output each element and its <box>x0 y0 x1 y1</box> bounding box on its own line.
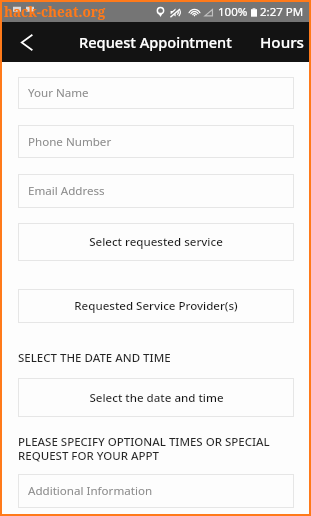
staticText: Phone Number <box>28 134 112 150</box>
button[interactable]: Requested Service Provider(s) <box>18 289 294 323</box>
staticText: Additional Information <box>28 483 153 499</box>
button[interactable]: Select requested service <box>18 223 294 261</box>
staticText: 100% <box>218 4 248 20</box>
button[interactable]: Email Address <box>18 174 294 208</box>
button[interactable]: Phone Number <box>18 125 294 158</box>
staticText: SELECT THE DATE AND TIME <box>18 350 171 366</box>
staticText: Hours <box>260 32 304 53</box>
button[interactable]: Additional Information <box>18 474 294 508</box>
staticText: 2:27 PM <box>260 4 304 20</box>
staticText: hack-cheat.org <box>4 3 106 21</box>
staticText: Requested Service Provider(s) <box>74 298 238 314</box>
button[interactable]: Select the date and time <box>18 378 294 417</box>
staticText: Request Appointment <box>79 32 232 52</box>
button[interactable]: Hours <box>252 24 309 61</box>
button[interactable]: Back <box>12 27 42 57</box>
staticText: Select the date and time <box>89 390 224 406</box>
staticText: PLEASE SPECIFY OPTIONAL TIMES OR SPECIAL… <box>18 434 294 463</box>
staticText: Your Name <box>28 85 89 101</box>
button[interactable]: Your Name <box>18 77 294 109</box>
staticText: Email Address <box>28 183 105 199</box>
staticText: Select requested service <box>89 234 223 250</box>
